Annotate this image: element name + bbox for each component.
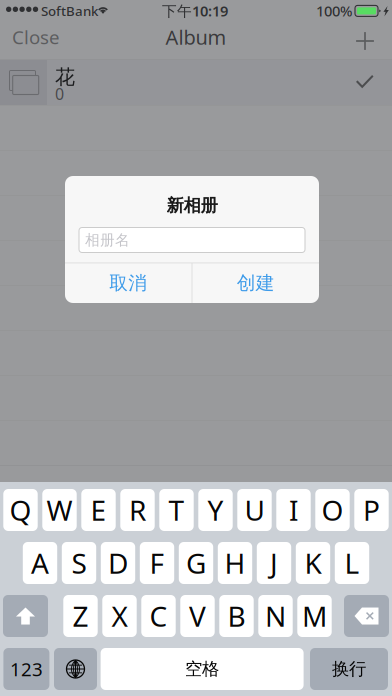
staticText: Y	[207, 491, 223, 529]
button[interactable]: 换行	[310, 648, 388, 690]
button[interactable]: O	[315, 489, 350, 531]
staticText: C	[149, 597, 167, 635]
staticText: N	[265, 597, 286, 635]
button[interactable]: 创建	[192, 263, 319, 303]
button[interactable]: 取消	[65, 263, 192, 303]
button[interactable]: P	[354, 489, 389, 531]
staticText: 新相册	[166, 195, 217, 216]
staticText: 花	[55, 65, 75, 89]
staticText: 0	[55, 83, 64, 104]
staticText: H	[224, 544, 245, 582]
staticText: Close	[12, 25, 60, 49]
staticText: 123	[10, 657, 43, 681]
staticText: 下午10:19	[162, 1, 228, 21]
staticText: 100%	[316, 1, 352, 21]
staticText: F	[149, 544, 164, 582]
button[interactable]: N	[258, 595, 293, 637]
staticText: S	[71, 544, 86, 582]
staticText: W	[46, 491, 72, 529]
staticText: B	[227, 597, 245, 635]
staticText: T	[168, 491, 184, 529]
staticText: SoftBank	[41, 2, 98, 20]
staticText: O	[321, 491, 343, 529]
button[interactable]: S	[62, 542, 96, 584]
button[interactable]: Y	[198, 489, 233, 531]
button[interactable]: F	[140, 542, 174, 584]
staticText: V	[189, 597, 206, 635]
staticText: 取消	[109, 271, 147, 294]
button[interactable]: T	[159, 489, 194, 531]
button[interactable]: U	[237, 489, 272, 531]
staticText: M	[302, 597, 327, 635]
staticText: K	[304, 544, 321, 582]
button[interactable]: Close	[0, 22, 78, 56]
staticText: Q	[9, 491, 31, 529]
button[interactable]: G	[179, 542, 213, 584]
staticText: 空格	[185, 658, 219, 680]
button[interactable]: Switch keyboard	[54, 648, 97, 690]
staticText: U	[244, 491, 264, 529]
button[interactable]: J	[257, 542, 291, 584]
button[interactable]: I	[276, 489, 311, 531]
button[interactable]: 123	[3, 648, 49, 690]
button[interactable]: C	[141, 595, 176, 637]
staticText: Z	[72, 597, 88, 635]
staticText: A	[31, 544, 49, 582]
staticText: D	[108, 544, 128, 582]
staticText: R	[129, 491, 146, 529]
staticText: 创建	[237, 271, 275, 294]
staticText: L	[344, 544, 359, 582]
button[interactable]: H	[218, 542, 252, 584]
button[interactable]: L	[335, 542, 369, 584]
staticText: X	[111, 597, 127, 635]
button[interactable]: V	[180, 595, 215, 637]
staticText: G	[186, 544, 206, 582]
staticText: Album	[165, 24, 226, 50]
staticText: P	[363, 491, 380, 529]
button[interactable]: A	[23, 542, 57, 584]
button[interactable]: Q	[3, 489, 38, 531]
button[interactable]: R	[120, 489, 155, 531]
button[interactable]: New album	[343, 22, 387, 60]
staticText: I	[289, 491, 298, 529]
staticText: J	[270, 544, 278, 582]
button[interactable]: Z	[63, 595, 98, 637]
button[interactable]: 空格	[101, 648, 304, 690]
button[interactable]: X	[102, 595, 137, 637]
button[interactable]: M	[297, 595, 332, 637]
staticText: 换行	[332, 658, 366, 680]
button[interactable]: E	[81, 489, 116, 531]
button[interactable]: Shift	[3, 595, 48, 637]
button[interactable]: B	[219, 595, 254, 637]
button[interactable]: 花	[0, 60, 392, 105]
button[interactable]: D	[101, 542, 135, 584]
button[interactable]: K	[296, 542, 330, 584]
button[interactable]: W	[42, 489, 77, 531]
staticText: E	[90, 491, 106, 529]
button[interactable]: Delete	[344, 595, 389, 637]
staticText: 相册名	[85, 231, 130, 249]
